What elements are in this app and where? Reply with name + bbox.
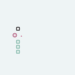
button[interactable]: App 4 <box>8 44 28 49</box>
button[interactable]: App 1 <box>8 26 28 32</box>
button[interactable]: App 2 <box>8 32 28 38</box>
button[interactable]: App 5 <box>8 49 28 54</box>
button[interactable]: App 3 <box>8 39 28 44</box>
